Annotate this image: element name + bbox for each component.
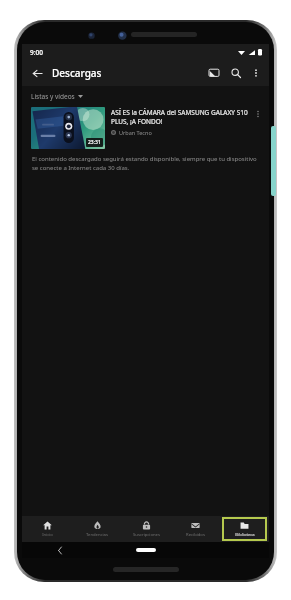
button[interactable]: Cast — [204, 63, 224, 83]
staticText: Biblioteca — [235, 532, 255, 538]
button[interactable]: Inicio — [22, 516, 72, 542]
button[interactable]: 23:31 — [22, 105, 269, 149]
button[interactable]: Listas y vídeos — [31, 92, 83, 101]
staticText: Inicio — [42, 532, 53, 538]
button[interactable]: Back — [58, 547, 62, 554]
button[interactable]: More options — [247, 64, 265, 82]
button[interactable]: Recibidos — [171, 516, 220, 542]
button[interactable]: Biblioteca — [224, 519, 265, 539]
staticText: ASÍ ES la CÁMARA del SAMSUNG GALAXY S10 … — [111, 108, 251, 126]
staticText: Recibidos — [186, 532, 205, 538]
staticText: Listas y vídeos — [31, 92, 75, 101]
staticText: 9:00 — [30, 48, 43, 57]
button[interactable]: Video options — [251, 107, 265, 121]
staticText: El contenido descargado seguirá estando … — [32, 155, 259, 172]
button[interactable]: Back — [26, 62, 48, 84]
button[interactable]: Suscripciones — [122, 516, 171, 542]
staticText: Tendencias — [86, 532, 108, 538]
button[interactable]: Home — [136, 548, 156, 552]
staticText: Descargas — [52, 66, 102, 80]
button[interactable]: Tendencias — [72, 516, 122, 542]
staticText: 23:31 — [88, 139, 101, 146]
staticText: Urban Tecno — [119, 129, 152, 136]
staticText: Suscripciones — [133, 532, 160, 538]
button[interactable]: Search — [226, 63, 246, 83]
